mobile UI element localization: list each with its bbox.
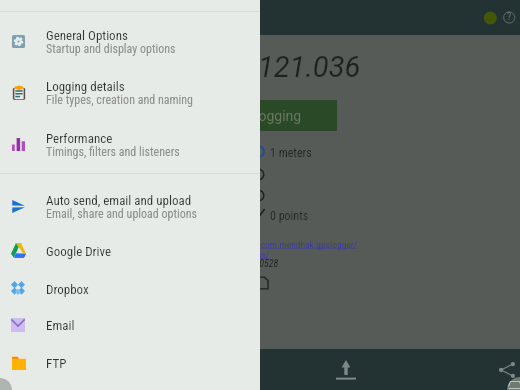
button[interactable]: Stop logging	[185, 100, 337, 131]
staticText: Google Drive	[46, 244, 112, 259]
staticText: ?	[507, 11, 512, 23]
button[interactable]: Logging details	[0, 67, 260, 118]
staticText: 1 meters	[270, 146, 312, 160]
staticText: Logging details	[46, 79, 125, 94]
button[interactable]: Auto send, email and upload	[0, 181, 260, 232]
staticText: Timings, filters and listeners	[46, 145, 180, 159]
staticText: General Options	[46, 28, 128, 43]
staticText: https://play.google.com/store/apps/detai…	[83, 239, 358, 250]
staticText: Performance	[46, 131, 113, 146]
staticText: Auto send, email and upload	[46, 193, 192, 208]
staticText: Startup and display options	[46, 42, 176, 56]
staticText: File types, creation and naming	[46, 93, 194, 107]
staticText: 0 points	[270, 209, 309, 223]
button[interactable]: Help	[493, 1, 520, 33]
staticText: FTP	[46, 356, 67, 371]
staticText: Email	[46, 318, 75, 333]
button[interactable]: Dropbox	[0, 270, 260, 307]
staticText: Email, share and upload options	[46, 207, 198, 221]
staticText: https://gpslogger.app/versions/	[150, 249, 270, 260]
staticText: Stop logging	[223, 108, 302, 124]
button[interactable]: FTP	[0, 344, 260, 381]
button[interactable]: General Options	[0, 16, 260, 67]
staticText: Dropbox	[46, 282, 89, 297]
button[interactable]: Google Drive	[0, 232, 260, 269]
button[interactable]: GPS status indicator	[474, 0, 506, 32]
button[interactable]: Email	[0, 306, 260, 343]
button[interactable]: Upload	[326, 354, 365, 390]
staticText: 20240528	[240, 258, 279, 270]
button[interactable]: Share	[488, 354, 520, 390]
staticText: 121.036	[258, 50, 361, 84]
button[interactable]: Performance	[0, 119, 260, 170]
